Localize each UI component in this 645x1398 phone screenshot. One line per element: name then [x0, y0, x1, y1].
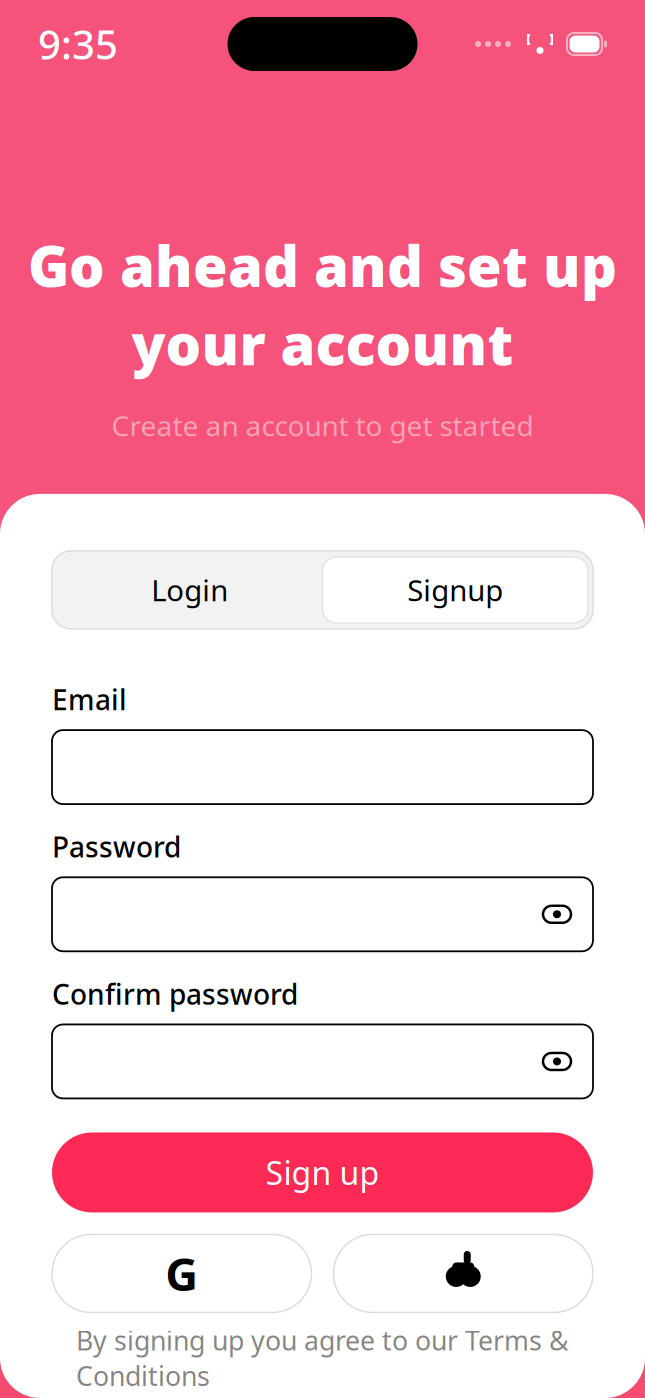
- staticText: Login: [151, 570, 228, 609]
- button[interactable]: Login: [57, 557, 322, 623]
- staticText: your account: [131, 306, 513, 381]
- button[interactable]: [52, 730, 593, 804]
- button[interactable]: [52, 877, 593, 951]
- staticText: Confirm password: [52, 975, 298, 1012]
- button[interactable]: Signup: [322, 557, 588, 623]
- staticText: Sign up: [265, 1151, 379, 1194]
- staticText: 9:35: [38, 17, 118, 70]
- button[interactable]: Sign up with Apple: [333, 1234, 593, 1312]
- staticText: Signup: [407, 570, 503, 609]
- staticText: Go ahead and set up: [28, 228, 617, 302]
- staticText: G: [165, 1243, 198, 1304]
- staticText: By signing up you agree to our Terms & C…: [76, 1322, 569, 1393]
- staticText: Create an account to get started: [111, 407, 533, 444]
- button[interactable]: Sign up with Google: [52, 1234, 311, 1312]
- button[interactable]: Sign up: [52, 1132, 593, 1212]
- staticText: Password: [52, 828, 181, 865]
- button[interactable]: [52, 1024, 593, 1098]
- staticText: Email: [52, 681, 127, 718]
- button[interactable]: By signing up you agree to our Terms & C…: [76, 1322, 569, 1393]
